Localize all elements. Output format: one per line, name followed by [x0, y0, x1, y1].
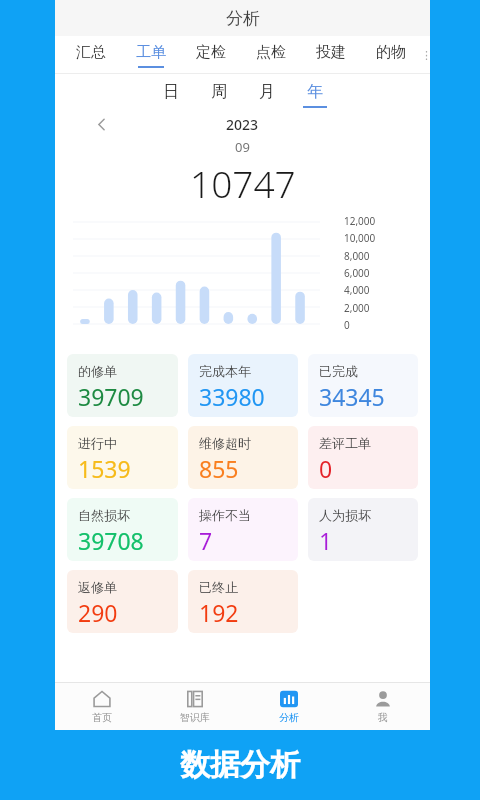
staticText: 年	[307, 82, 323, 102]
staticText: 290	[78, 597, 118, 628]
staticText: 的修单	[78, 363, 117, 379]
staticText: 进行中	[78, 435, 117, 451]
staticText: 维修超时	[199, 435, 251, 451]
button[interactable]: 完成本年	[188, 354, 298, 417]
button[interactable]: Previous year	[89, 112, 113, 136]
staticText: 定检	[196, 43, 226, 62]
staticText: 数据分析	[180, 746, 300, 784]
button[interactable]: 返修单	[67, 570, 178, 633]
staticText: 投建	[316, 43, 346, 62]
staticText: 6,000	[344, 266, 370, 280]
staticText: 已完成	[319, 363, 358, 379]
button[interactable]: 点检	[241, 36, 301, 74]
staticText: 分析	[279, 711, 299, 724]
staticText: 2023	[226, 115, 259, 134]
staticText: 智识库	[180, 711, 210, 724]
staticText: 完成本年	[199, 363, 251, 379]
staticText: 工单	[136, 43, 166, 62]
button[interactable]: 月	[243, 82, 291, 112]
staticText: 39709	[78, 381, 144, 412]
staticText: 4,000	[344, 283, 370, 297]
button[interactable]: 日	[147, 82, 195, 112]
button[interactable]: 分析	[242, 683, 336, 730]
staticText: 点检	[256, 43, 286, 62]
staticText: 34345	[319, 381, 385, 412]
button[interactable]: 已终止	[188, 570, 298, 633]
staticText: ⋮	[421, 49, 430, 62]
staticText: 日	[163, 82, 179, 102]
staticText: 0	[319, 453, 333, 484]
staticText: 操作不当	[199, 507, 251, 523]
staticText: 的物	[376, 43, 406, 62]
button[interactable]: 的物	[361, 36, 421, 74]
button[interactable]: 进行中	[67, 426, 178, 489]
button[interactable]: 年	[291, 82, 339, 112]
staticText: 0	[344, 318, 350, 332]
button[interactable]: 首页	[55, 683, 148, 730]
button[interactable]: 操作不当	[188, 498, 298, 561]
staticText: 1539	[78, 453, 131, 484]
button[interactable]: 已完成	[308, 354, 418, 417]
staticText: 33980	[199, 381, 265, 412]
staticText: 8,000	[344, 249, 370, 263]
staticText: 09	[235, 138, 250, 156]
staticText: 855	[199, 453, 239, 484]
button[interactable]: 差评工单	[308, 426, 418, 489]
staticText: 自然损坏	[78, 507, 130, 523]
staticText: 人为损坏	[319, 507, 371, 523]
staticText: 10747	[190, 158, 296, 204]
button[interactable]: 我	[336, 683, 430, 730]
staticText: 月	[259, 82, 275, 102]
staticText: 我	[378, 711, 388, 724]
staticText: 12,000	[344, 214, 376, 228]
staticText: 已终止	[199, 579, 238, 595]
button[interactable]: 自然损坏	[67, 498, 178, 561]
staticText: 汇总	[76, 43, 106, 62]
staticText: 首页	[92, 711, 112, 724]
staticText: 分析	[226, 8, 260, 29]
staticText: 10,000	[344, 231, 376, 245]
button[interactable]: 周	[195, 82, 243, 112]
staticText: 39708	[78, 525, 144, 556]
button[interactable]: 投建	[301, 36, 361, 74]
button[interactable]: 智识库	[148, 683, 242, 730]
staticText: 192	[199, 597, 239, 628]
staticText: 返修单	[78, 579, 117, 595]
button[interactable]: 的修单	[67, 354, 178, 417]
button[interactable]: 工单	[121, 36, 181, 74]
staticText: 差评工单	[319, 435, 371, 451]
staticText: 周	[211, 82, 227, 102]
button[interactable]: 定检	[181, 36, 241, 74]
staticText: 2,000	[344, 301, 370, 315]
staticText: 7	[199, 525, 213, 556]
button[interactable]: 维修超时	[188, 426, 298, 489]
staticText: 1	[319, 525, 333, 556]
button[interactable]: 人为损坏	[308, 498, 418, 561]
button[interactable]: 汇总	[61, 36, 121, 74]
